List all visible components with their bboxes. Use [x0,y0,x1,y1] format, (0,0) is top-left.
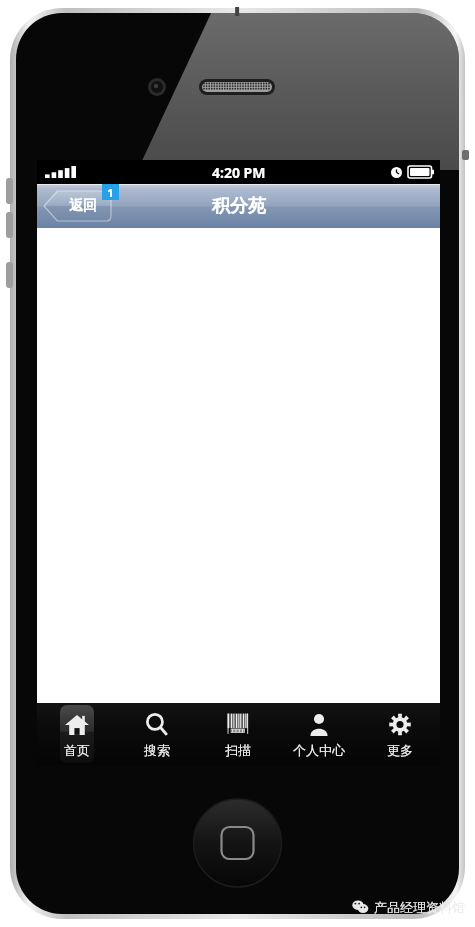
staticText: 4:20 PM [212,163,266,182]
staticText: 搜索 [144,742,170,758]
button[interactable]: 返回 [44,191,111,221]
staticText: 个人中心 [293,742,345,758]
button[interactable]: 搜索 [117,703,197,765]
staticText: 返回 [69,197,97,215]
staticText: 更多 [387,742,413,758]
staticText: 首页 [64,742,90,758]
staticText: 1 [107,185,114,200]
staticText: 扫描 [225,742,251,758]
other: Badge 1 [102,184,119,200]
button[interactable]: 扫描 [197,703,278,765]
staticText: 产品经理资料馆 [374,899,465,915]
button[interactable]: 个人中心 [278,703,359,765]
button[interactable]: 首页 [37,703,117,765]
staticText: 积分苑 [212,195,266,218]
button[interactable]: 更多 [359,703,440,765]
